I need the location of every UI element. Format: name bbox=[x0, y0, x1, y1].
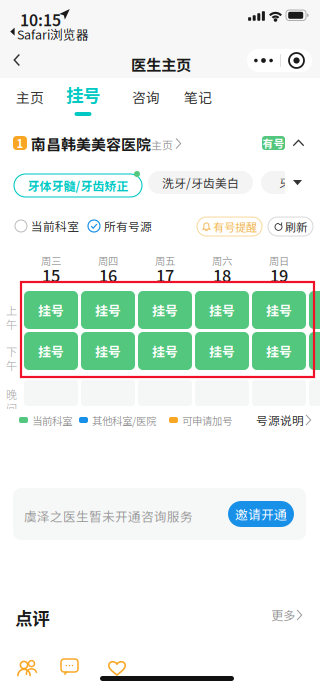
staticText: 午 bbox=[6, 316, 17, 332]
staticText: 17 bbox=[156, 263, 174, 287]
staticText: 牙体牙髓/牙齿矫正 bbox=[27, 177, 128, 194]
button[interactable]: 同行 bbox=[17, 659, 39, 677]
staticText: 挂号 bbox=[209, 301, 235, 319]
staticText: 19 bbox=[270, 263, 288, 287]
staticText: 周六 bbox=[212, 253, 232, 268]
button[interactable]: 当前科室 bbox=[15, 214, 79, 238]
button[interactable]: 收藏 bbox=[108, 660, 126, 676]
button[interactable]: 牙周 bbox=[261, 171, 320, 194]
button[interactable]: 挂号 bbox=[81, 332, 135, 370]
button[interactable]: 笔记 bbox=[172, 78, 224, 124]
button[interactable]: 挂号 bbox=[81, 291, 135, 329]
staticText: 周五 bbox=[155, 253, 175, 268]
staticText: 当前科室 bbox=[31, 217, 79, 234]
button[interactable]: 挂号 bbox=[24, 291, 78, 329]
staticText: 有号 bbox=[262, 135, 284, 151]
button[interactable]: 刷新 bbox=[268, 217, 313, 236]
staticText: 周三 bbox=[41, 253, 61, 268]
staticText: 1 bbox=[16, 135, 23, 151]
staticText: 洗牙/牙齿美白 bbox=[162, 174, 239, 191]
staticText: 号源说明 bbox=[256, 411, 304, 428]
staticText: 挂号 bbox=[209, 342, 235, 360]
button[interactable]: 挂号 bbox=[252, 332, 306, 370]
button[interactable]: 邀请开通 bbox=[228, 501, 294, 527]
button[interactable]: 主页 bbox=[4, 78, 56, 124]
staticText: 当前科室 bbox=[32, 413, 72, 428]
staticText: 挂号 bbox=[95, 301, 121, 319]
staticText: 点评 bbox=[15, 605, 49, 630]
staticText: 挂号 bbox=[66, 82, 100, 107]
button[interactable]: 挂号 bbox=[57, 78, 109, 124]
staticText: 刷新 bbox=[285, 218, 307, 235]
button[interactable]: 挂号 bbox=[252, 291, 306, 329]
staticText: 晚 bbox=[6, 386, 17, 402]
staticText: 更多 bbox=[271, 606, 295, 624]
staticText: Safari浏览器 bbox=[17, 25, 89, 43]
button[interactable]: 关闭 bbox=[281, 49, 312, 72]
staticText: 周日 bbox=[269, 253, 289, 268]
staticText: 挂号 bbox=[152, 342, 178, 360]
staticText: 午 bbox=[6, 357, 17, 373]
staticText: 16 bbox=[99, 263, 117, 287]
staticText: 牙周 bbox=[279, 174, 303, 191]
button[interactable]: 消息 bbox=[61, 659, 79, 676]
staticText: 挂号 bbox=[266, 301, 292, 319]
button[interactable]: 挂号 bbox=[24, 332, 78, 370]
staticText: 主页 bbox=[16, 87, 44, 107]
staticText: 所有号源 bbox=[104, 217, 152, 234]
button[interactable]: 咨询 bbox=[120, 78, 172, 124]
button[interactable]: 所有号源 bbox=[88, 214, 152, 238]
staticText: 邀请开通 bbox=[235, 505, 287, 523]
staticText: 咨询 bbox=[132, 87, 160, 107]
staticText: 挂号 bbox=[266, 342, 292, 360]
button[interactable]: 洗牙/牙齿美白 bbox=[148, 171, 253, 194]
staticText: 虞泽之医生暂未开通咨询服务 bbox=[24, 507, 193, 525]
staticText: 挂号 bbox=[152, 301, 178, 319]
button[interactable]: 更多 bbox=[271, 604, 304, 626]
staticText: 18 bbox=[213, 263, 231, 287]
button[interactable]: 有号提醒 bbox=[197, 217, 262, 236]
button[interactable]: 挂号 bbox=[195, 291, 249, 329]
staticText: 主页 bbox=[151, 137, 173, 153]
button[interactable]: 牙体牙髓/牙齿矫正 bbox=[12, 168, 144, 197]
button[interactable]: 1 bbox=[0, 126, 320, 160]
staticText: 上 bbox=[6, 302, 17, 318]
button[interactable]: 挂号 bbox=[138, 291, 192, 329]
staticText: 南昌韩美美容医院 bbox=[31, 133, 151, 155]
button[interactable]: 号源说明 bbox=[256, 410, 313, 430]
button[interactable]: 挂号 bbox=[195, 332, 249, 370]
staticText: 可申请加号 bbox=[182, 413, 232, 428]
button[interactable]: 返回 bbox=[0, 42, 34, 78]
staticText: 医生主页 bbox=[131, 53, 191, 75]
staticText: 间 bbox=[6, 400, 17, 416]
button[interactable]: 更多 bbox=[247, 49, 280, 72]
staticText: 有号提醒 bbox=[213, 218, 257, 235]
staticText: 15 bbox=[42, 263, 60, 287]
staticText: 挂号 bbox=[95, 342, 121, 360]
staticText: 周四 bbox=[98, 253, 118, 268]
staticText: 笔记 bbox=[184, 87, 212, 107]
button[interactable]: 展开全部 bbox=[293, 180, 302, 186]
staticText: 挂号 bbox=[38, 301, 64, 319]
staticText: 10:15 bbox=[20, 8, 61, 31]
staticText: 其他科室/医院 bbox=[92, 413, 156, 428]
staticText: 挂号 bbox=[38, 342, 64, 360]
staticText: 下 bbox=[6, 343, 17, 359]
button[interactable]: 挂号 bbox=[138, 332, 192, 370]
